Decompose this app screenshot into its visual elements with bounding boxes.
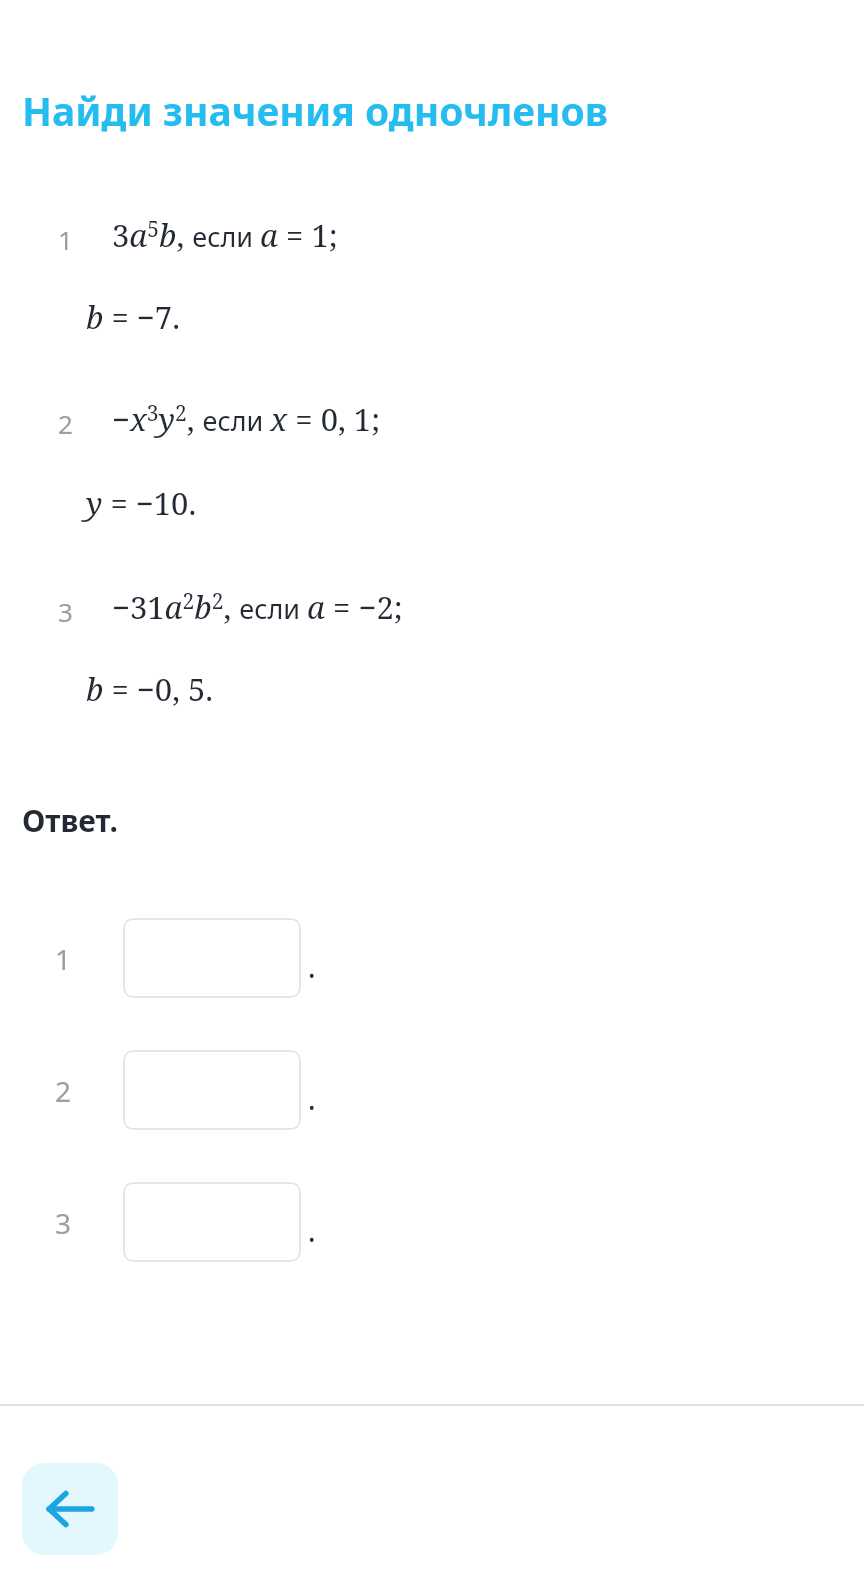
button[interactable]: Answer field 3 (123, 1182, 301, 1262)
staticText: b = −0, 5. (86, 668, 214, 710)
staticText: Найди значения одночленов (22, 84, 609, 137)
staticText: b = −7. (86, 296, 180, 338)
staticText: 2 (55, 1072, 72, 1110)
staticText: 1 (58, 222, 73, 257)
staticText: 3a5b, если a = 1; (112, 214, 338, 256)
staticText: −31a2b2, если a = −2; (112, 586, 403, 628)
button[interactable]: Back (22, 1463, 118, 1555)
staticText: . (308, 1078, 316, 1119)
staticText: 3 (55, 1204, 72, 1242)
staticText: . (308, 1210, 316, 1251)
staticText: 2 (58, 406, 73, 441)
staticText: . (308, 946, 316, 987)
staticText: −x3y2, если x = 0, 1; (112, 398, 381, 440)
staticText: 3 (58, 594, 73, 629)
staticText: y = −10. (86, 482, 197, 524)
staticText: 1 (55, 940, 72, 978)
staticText: Ответ. (22, 800, 118, 841)
button[interactable]: Answer field 2 (123, 1050, 301, 1130)
button[interactable]: Answer field 1 (123, 918, 301, 998)
